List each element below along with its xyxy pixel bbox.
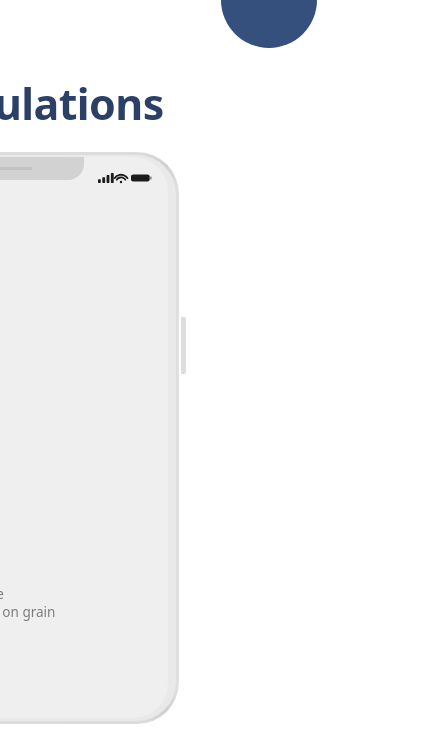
other: Cellular signal [98,173,111,183]
staticText: Calculations [0,74,164,133]
other: Wi-Fi [115,173,127,183]
staticText: conversion factor is based on average [0,585,4,603]
staticText: bushel weight and can change based on gr… [0,603,56,621]
other: Battery [131,173,152,183]
